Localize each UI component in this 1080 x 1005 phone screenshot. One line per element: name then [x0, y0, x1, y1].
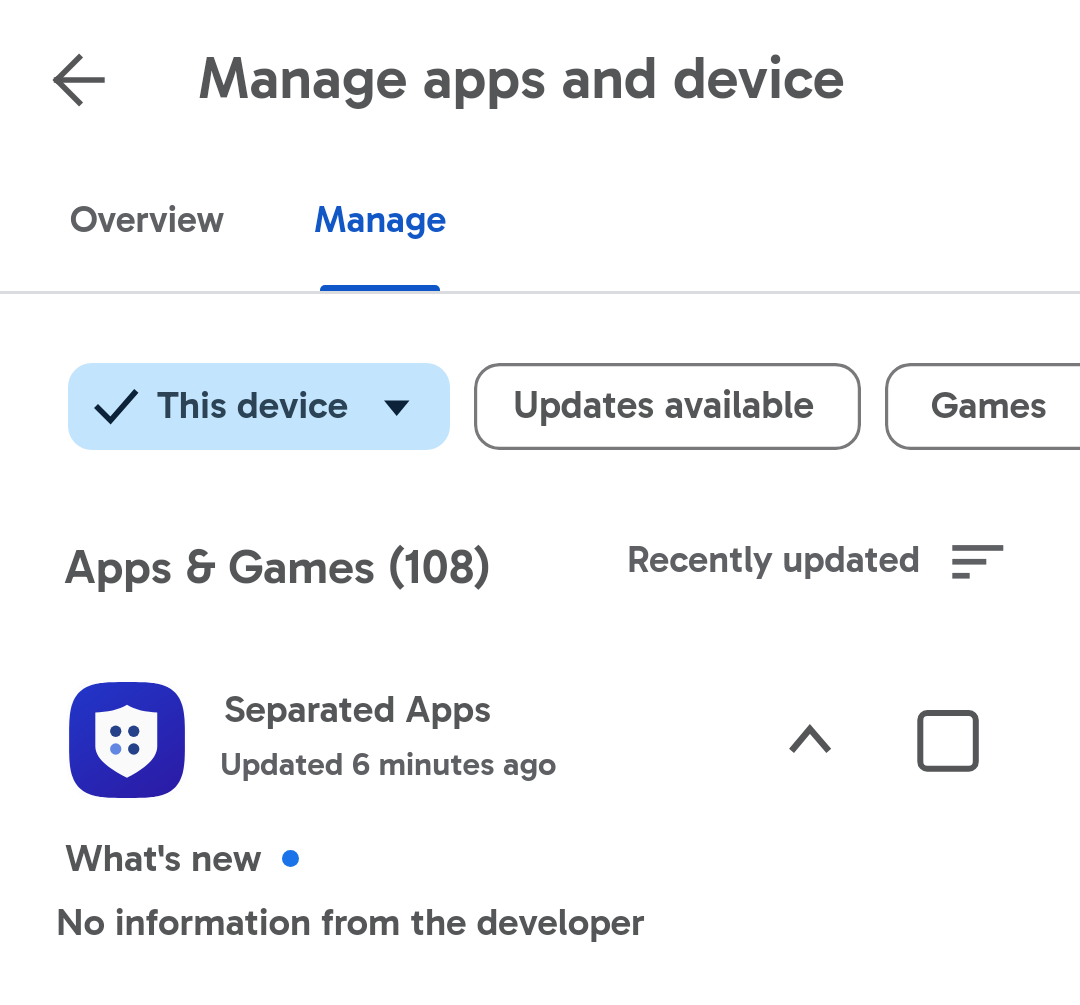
button[interactable]: [610, 528, 1010, 596]
button[interactable]: [300, 160, 460, 291]
staticText: What's new: [65, 835, 262, 881]
staticText: Manage: [314, 197, 447, 242]
staticText: Manage apps and device: [198, 42, 845, 113]
button[interactable]: [0, 655, 1080, 815]
staticText: Apps & Games (108): [64, 538, 491, 596]
staticText: Recently updated: [627, 537, 921, 582]
staticText: This device: [157, 382, 349, 428]
staticText: Updated 6 minutes ago: [220, 744, 557, 783]
button[interactable]: Collapse details: [766, 694, 854, 782]
staticText: No information from the developer: [56, 899, 645, 945]
button[interactable]: Select app: [898, 694, 986, 782]
button[interactable]: [474, 363, 861, 450]
staticText: Separated Apps: [224, 686, 492, 732]
staticText: Overview: [70, 197, 225, 241]
staticText: Updates available: [513, 382, 815, 429]
button[interactable]: [68, 363, 450, 450]
staticText: Games: [931, 382, 1047, 428]
button[interactable]: [0, 160, 300, 291]
button[interactable]: Back: [39, 45, 109, 115]
button[interactable]: [885, 363, 1080, 450]
